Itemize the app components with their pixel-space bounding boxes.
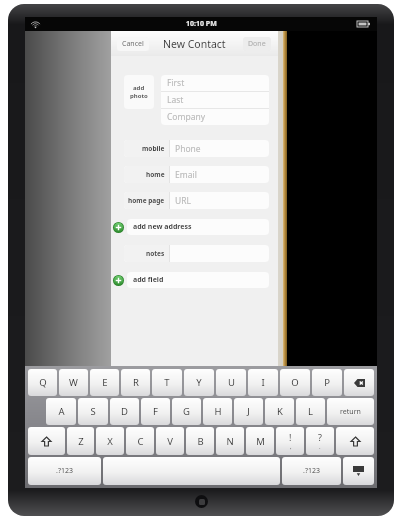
button[interactable]: First <box>161 75 269 91</box>
button[interactable]: S <box>78 398 108 425</box>
button[interactable]: W <box>59 369 88 396</box>
staticText: U <box>228 376 235 389</box>
staticText: ! <box>289 431 292 443</box>
button[interactable]: F <box>141 398 170 425</box>
staticText: W <box>69 376 78 389</box>
staticText: photo <box>130 92 148 100</box>
button[interactable]: H <box>203 398 232 425</box>
button[interactable]: Shift <box>336 427 374 455</box>
staticText: Q <box>39 376 47 389</box>
button[interactable]: add <box>124 75 154 109</box>
staticText: V <box>167 435 173 448</box>
staticText: ? <box>318 431 322 443</box>
staticText: .?123 <box>56 466 73 476</box>
staticText: C <box>137 435 144 448</box>
button[interactable]: B <box>186 427 214 455</box>
staticText: E <box>102 376 108 389</box>
staticText: R <box>133 376 139 389</box>
staticText: home <box>146 170 165 179</box>
staticText: Y <box>196 376 202 389</box>
button[interactable]: V <box>156 427 184 455</box>
staticText: G <box>183 405 190 418</box>
button[interactable]: I <box>248 369 278 396</box>
button[interactable]: add field <box>127 272 269 288</box>
button[interactable]: C <box>126 427 154 455</box>
button[interactable]: Company <box>161 109 269 125</box>
staticText: Company <box>167 111 206 123</box>
button[interactable]: ! <box>276 427 304 455</box>
staticText: Phone <box>175 143 201 155</box>
staticText: .?123 <box>303 466 320 476</box>
staticText: K <box>277 405 283 418</box>
staticText: add <box>133 84 145 92</box>
button[interactable]: J <box>234 398 263 425</box>
button[interactable]: P <box>312 369 342 396</box>
button[interactable]: N <box>216 427 244 455</box>
button[interactable]: home page <box>124 192 269 209</box>
staticText: T <box>164 376 170 389</box>
button[interactable]: A <box>46 398 76 425</box>
staticText: . <box>319 443 321 451</box>
button[interactable]: add field <box>113 275 124 286</box>
staticText: Done <box>248 39 266 49</box>
button[interactable]: mobile <box>124 140 269 157</box>
staticText: return <box>340 407 361 417</box>
button[interactable]: add new address <box>113 222 124 233</box>
staticText: F <box>153 405 158 418</box>
button[interactable]: .?123 <box>28 457 101 485</box>
button[interactable]: ? <box>306 427 334 455</box>
staticText: notes <box>146 249 165 258</box>
button[interactable]: Y <box>184 369 214 396</box>
button[interactable]: .?123 <box>282 457 341 485</box>
button[interactable]: home <box>124 166 269 183</box>
button[interactable]: Z <box>67 427 94 455</box>
button[interactable]: add new address <box>127 219 269 235</box>
button[interactable]: Backspace <box>344 369 374 396</box>
staticText: First <box>167 77 185 89</box>
button[interactable]: Space <box>103 457 280 485</box>
staticText: S <box>90 405 96 418</box>
staticText: J <box>247 405 250 418</box>
button[interactable]: return <box>327 398 374 425</box>
button[interactable]: E <box>90 369 119 396</box>
button[interactable]: Hide keyboard <box>343 457 374 485</box>
staticText: 10:10 PM <box>186 19 217 29</box>
staticText: M <box>256 435 265 448</box>
button[interactable]: M <box>246 427 274 455</box>
button[interactable]: X <box>96 427 124 455</box>
staticText: URL <box>175 195 191 207</box>
button[interactable]: T <box>152 369 182 396</box>
staticText: , <box>290 443 292 451</box>
staticText: A <box>58 405 65 418</box>
button[interactable]: G <box>172 398 201 425</box>
staticText: O <box>291 376 299 389</box>
staticText: home page <box>128 196 165 205</box>
staticText: X <box>107 435 113 448</box>
staticText: H <box>214 405 222 418</box>
staticText: Last <box>167 94 184 106</box>
button[interactable]: Done <box>248 37 266 51</box>
staticText: D <box>121 405 128 418</box>
button[interactable]: U <box>216 369 246 396</box>
button[interactable]: O <box>280 369 310 396</box>
staticText: add field <box>133 275 164 285</box>
staticText: B <box>197 435 204 448</box>
staticText: add new address <box>133 222 192 232</box>
staticText: New Contact <box>163 37 226 51</box>
button[interactable]: D <box>110 398 139 425</box>
staticText: Cancel <box>122 39 144 49</box>
staticText: N <box>226 435 234 448</box>
button[interactable]: notes <box>124 245 269 262</box>
staticText: mobile <box>142 144 165 153</box>
button[interactable]: Q <box>28 369 57 396</box>
button[interactable]: L <box>296 398 325 425</box>
button[interactable]: K <box>265 398 294 425</box>
staticText: P <box>324 376 330 389</box>
button[interactable]: Shift <box>28 427 65 455</box>
staticText: Z <box>78 435 84 448</box>
button[interactable]: Cancel <box>122 37 144 51</box>
button[interactable]: R <box>121 369 150 396</box>
staticText: I <box>261 376 265 389</box>
button[interactable]: Last <box>161 92 269 108</box>
button[interactable]: Home <box>195 495 208 508</box>
